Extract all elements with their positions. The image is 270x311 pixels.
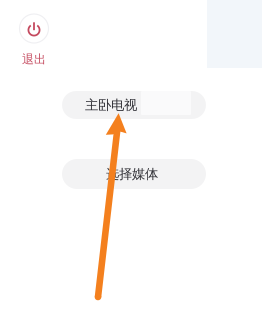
staticText: 选择媒体 bbox=[106, 166, 158, 182]
staticText: 退出 bbox=[22, 52, 46, 67]
button[interactable]: 主卧电视 bbox=[62, 91, 206, 119]
staticText: 主卧电视 bbox=[85, 97, 137, 113]
button[interactable]: 选择媒体 bbox=[62, 159, 206, 189]
button[interactable]: 退出 bbox=[17, 14, 51, 67]
